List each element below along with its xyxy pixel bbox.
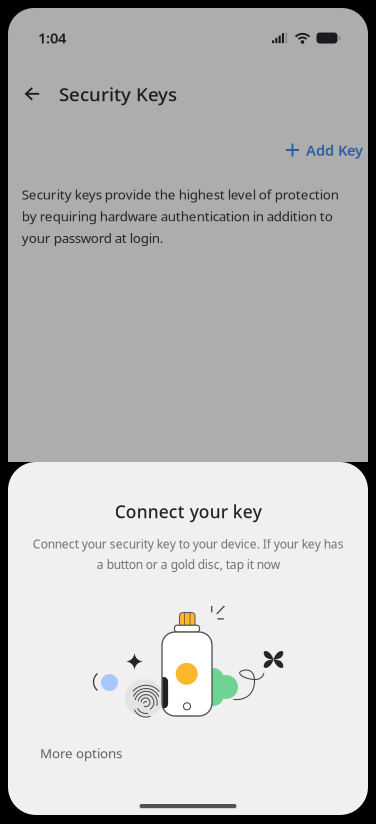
staticText: More options <box>40 744 122 762</box>
button[interactable]: More options <box>34 740 128 766</box>
button[interactable]: Add Key <box>277 135 372 165</box>
button[interactable]: Security Keys <box>8 72 223 116</box>
staticText: Add Key <box>306 140 363 160</box>
staticText: Connect your security key to your device… <box>32 536 343 572</box>
staticText: Connect your key <box>114 500 261 523</box>
staticText: Security keys provide the highest level … <box>22 185 339 247</box>
staticText: 1:04 <box>38 28 66 47</box>
staticText: Security Keys <box>59 82 177 106</box>
